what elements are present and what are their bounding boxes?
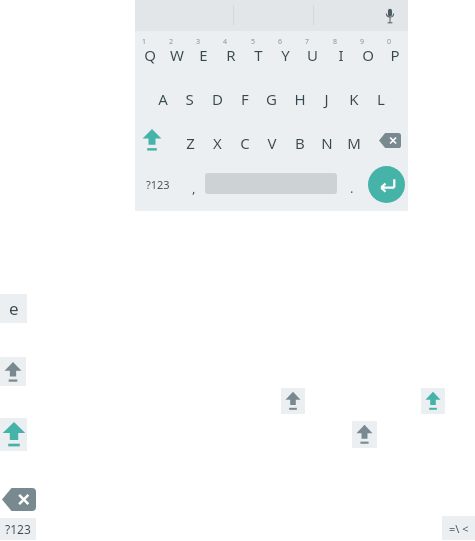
button[interactable]: Shift	[421, 388, 445, 414]
button[interactable]: A	[149, 77, 176, 117]
button[interactable]: S	[176, 77, 203, 117]
staticText: 9	[360, 37, 365, 47]
button[interactable]: Enter	[368, 166, 405, 203]
staticText: 3	[196, 37, 201, 47]
button[interactable]: D	[204, 77, 231, 117]
staticText: R	[226, 45, 236, 65]
button[interactable]: B	[286, 121, 313, 161]
staticText: V	[267, 133, 277, 153]
staticText: e	[9, 297, 19, 320]
staticText: F	[241, 89, 249, 109]
button[interactable]: 3	[190, 33, 217, 73]
button[interactable]: 2	[163, 33, 190, 73]
staticText: 5	[251, 37, 256, 47]
staticText: P	[390, 45, 400, 65]
button[interactable]: 0	[381, 33, 408, 73]
staticText: 8	[333, 37, 338, 47]
button[interactable]: G	[258, 77, 285, 117]
button[interactable]: e	[0, 294, 27, 323]
staticText: U	[307, 45, 318, 65]
staticText: B	[295, 133, 305, 153]
staticText: H	[294, 89, 306, 109]
staticText: I	[338, 45, 344, 65]
staticText: D	[212, 89, 223, 109]
button[interactable]: C	[231, 121, 258, 161]
button[interactable]: Shift	[0, 357, 26, 386]
staticText: A	[158, 89, 168, 109]
button[interactable]: V	[258, 121, 285, 161]
staticText: O	[362, 45, 374, 65]
button[interactable]: M	[340, 121, 367, 161]
button[interactable]: K	[340, 77, 367, 117]
button[interactable]: Backspace	[1, 486, 37, 513]
button[interactable]: ,	[183, 166, 205, 202]
staticText: G	[266, 89, 277, 109]
staticText: N	[321, 133, 333, 153]
button[interactable]: X	[204, 121, 231, 161]
button[interactable]: Shift	[0, 418, 27, 451]
staticText: ?123	[146, 177, 170, 192]
button[interactable]: Shift	[352, 421, 377, 448]
button[interactable]: ?123	[138, 166, 178, 202]
button[interactable]: H	[286, 77, 313, 117]
staticText: 7	[305, 37, 310, 47]
staticText: .	[350, 179, 354, 197]
staticText: Q	[144, 45, 156, 65]
staticText: T	[254, 45, 263, 65]
staticText: K	[349, 89, 359, 109]
staticText: S	[185, 89, 194, 109]
button[interactable]: =\ <	[442, 516, 475, 540]
staticText: 1	[142, 37, 147, 47]
button[interactable]: Z	[177, 121, 204, 161]
button[interactable]: 8	[327, 33, 354, 73]
button[interactable]: L	[367, 77, 394, 117]
button[interactable]: 1	[136, 33, 163, 73]
staticText: 2	[169, 37, 174, 47]
button[interactable]: Shift	[281, 388, 305, 414]
button[interactable]: J	[313, 77, 340, 117]
button[interactable]: 4	[217, 33, 244, 73]
staticText: E	[199, 45, 208, 65]
button[interactable]: F	[231, 77, 258, 117]
button[interactable]: Shift	[137, 122, 167, 158]
staticText: J	[324, 89, 329, 109]
button[interactable]: N	[313, 121, 340, 161]
staticText: 6	[278, 37, 283, 47]
staticText: =\ <	[449, 521, 469, 536]
button[interactable]: 5	[245, 33, 272, 73]
button[interactable]: 9	[354, 33, 381, 73]
staticText: 4	[223, 37, 228, 47]
button[interactable]: ?123	[0, 518, 36, 540]
staticText: W	[170, 45, 184, 65]
button[interactable]: Backspace	[375, 127, 405, 153]
button[interactable]: .	[341, 166, 363, 202]
staticText: ?123	[5, 521, 31, 537]
staticText: C	[240, 133, 250, 153]
button[interactable]: 7	[299, 33, 326, 73]
staticText: L	[377, 89, 385, 109]
staticText: M	[347, 133, 361, 153]
staticText: Y	[281, 45, 290, 65]
button[interactable]: 6	[272, 33, 299, 73]
button[interactable]: Voice input	[378, 3, 402, 28]
staticText: Z	[186, 133, 195, 153]
staticText: X	[213, 133, 222, 153]
staticText: ,	[192, 179, 196, 197]
staticText: 0	[387, 37, 392, 47]
